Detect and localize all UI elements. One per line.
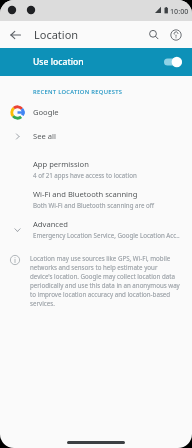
- button[interactable]: Wi-Fi and Bluetooth scanning: [0, 184, 192, 214]
- staticText: Location: [34, 27, 79, 42]
- staticText: Emergency Location Service, Google Locat…: [33, 231, 180, 239]
- staticText: Use location: [33, 56, 84, 68]
- staticText: App permission: [33, 159, 89, 169]
- staticText: 10:00: [170, 6, 189, 16]
- button[interactable]: Back: [6, 25, 26, 45]
- staticText: Google: [33, 107, 59, 117]
- button[interactable]: Help: [166, 25, 186, 45]
- staticText: Advanced: [33, 219, 68, 229]
- button[interactable]: Google: [0, 100, 192, 124]
- button[interactable]: App permission: [0, 154, 192, 184]
- staticText: Both Wi-Fi and Bluetooth scanning are of…: [33, 201, 155, 209]
- button[interactable]: Advanced: [0, 214, 192, 244]
- staticText: 4 of 21 apps have access to location: [33, 171, 137, 179]
- staticText: Wi-Fi and Bluetooth scanning: [33, 189, 138, 199]
- staticText: RECENT LOCATION REQUESTS: [33, 88, 123, 96]
- staticText: Location may use sources like GPS, Wi-Fi…: [30, 254, 180, 308]
- button[interactable]: See all: [0, 124, 192, 148]
- button[interactable]: Use location: [0, 48, 192, 76]
- button[interactable]: Search: [144, 25, 164, 45]
- staticText: See all: [33, 131, 56, 141]
